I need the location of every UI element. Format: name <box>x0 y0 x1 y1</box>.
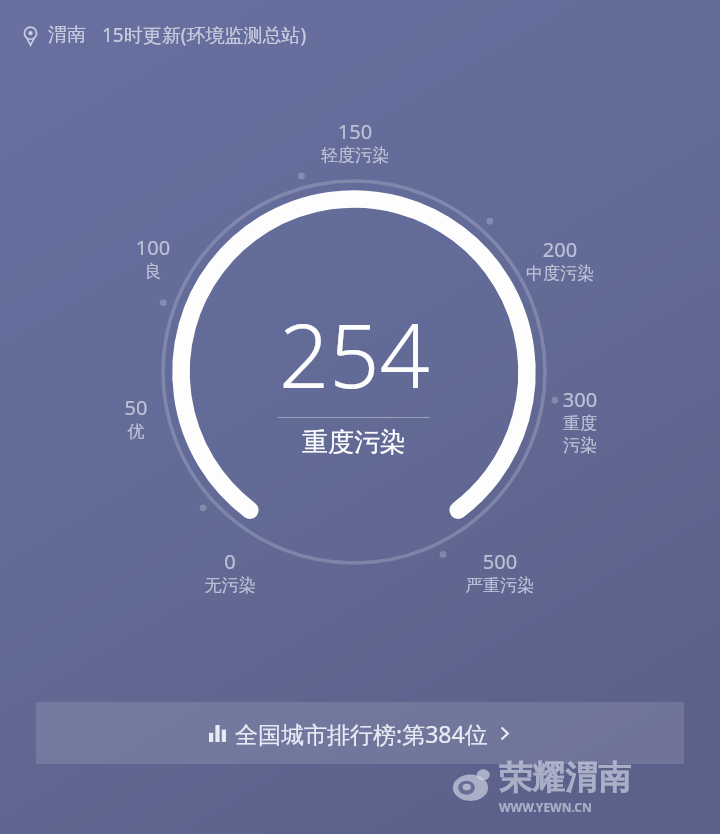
staticText: 荣耀渭南 <box>499 757 631 799</box>
staticText: 50 <box>108 394 164 421</box>
staticText: 100 <box>118 234 188 261</box>
staticText: 良 <box>118 261 188 282</box>
staticText: 15时更新(环境监测总站) <box>102 22 307 48</box>
staticText: 严重污染 <box>440 575 560 596</box>
staticText: 轻度污染 <box>300 145 410 166</box>
staticText: 渭南 <box>48 23 86 47</box>
staticText: 全国城市排行榜:第384位 <box>235 718 488 749</box>
staticText: 中度污染 <box>505 263 615 284</box>
staticText: 无污染 <box>170 575 290 596</box>
staticText: 优 <box>108 421 164 442</box>
staticText: WWW.YEWN.CN <box>499 799 592 815</box>
button[interactable]: Location <box>14 16 313 54</box>
staticText: 500 <box>440 548 560 575</box>
button[interactable]: 全国城市排行榜:第384位 <box>36 702 684 764</box>
staticText: 重度污染 <box>302 426 406 459</box>
staticText: 0 <box>170 548 290 575</box>
other: Location <box>20 25 41 46</box>
staticText: 200 <box>505 236 615 263</box>
staticText: 254 <box>279 294 430 414</box>
staticText: 150 <box>300 118 410 145</box>
staticText: 300 <box>552 386 608 413</box>
staticText: 重度 污染 <box>552 413 608 456</box>
